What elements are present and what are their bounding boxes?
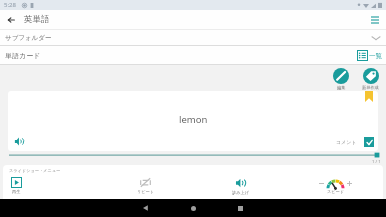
button[interactable]: Play slideshow xyxy=(3,177,98,194)
staticText: 再生 xyxy=(12,189,21,194)
button[interactable]: Back xyxy=(138,200,154,216)
staticText: 5:28 xyxy=(4,1,16,9)
button[interactable]: Card progress xyxy=(9,151,377,160)
staticText: スピード xyxy=(327,189,345,194)
staticText: 読み上げ xyxy=(232,190,249,195)
button[interactable]: Play pronunciation xyxy=(13,135,25,147)
button[interactable]: Repeat off xyxy=(98,177,193,194)
staticText: 単語カード xyxy=(5,51,41,60)
button[interactable]: Home xyxy=(185,200,201,216)
staticText: 一覧 xyxy=(369,52,382,60)
staticText: 英単語 xyxy=(24,14,50,25)
button[interactable]: コメント xyxy=(336,139,357,145)
button[interactable]: Back xyxy=(3,12,18,27)
button[interactable]: Recent apps xyxy=(232,200,248,216)
button[interactable]: Menu xyxy=(368,13,382,27)
staticText: 1 / 1 xyxy=(372,159,381,165)
staticText: lemon xyxy=(179,113,208,126)
button[interactable]: Create new xyxy=(362,66,379,90)
staticText: 新規作成 xyxy=(362,85,379,90)
other: Decrease speed xyxy=(319,181,324,186)
button[interactable]: 一覧 xyxy=(357,50,382,61)
button[interactable]: Bookmark xyxy=(365,91,373,102)
button[interactable]: Read aloud xyxy=(193,176,288,195)
staticText: サブフォルダー xyxy=(5,34,52,42)
button[interactable]: サブフォルダー xyxy=(0,30,386,45)
button[interactable]: Learned checkbox xyxy=(364,137,374,147)
button[interactable]: Speed xyxy=(288,178,383,194)
button[interactable]: Edit xyxy=(333,66,349,90)
staticText: 編集 xyxy=(337,85,346,90)
other: Increase speed xyxy=(347,181,352,186)
staticText: リピート xyxy=(137,189,155,194)
button[interactable]: Bookmark xyxy=(8,91,378,151)
other: Expand subfolder xyxy=(372,36,380,40)
staticText: スライドショー・メニュー xyxy=(9,168,61,173)
